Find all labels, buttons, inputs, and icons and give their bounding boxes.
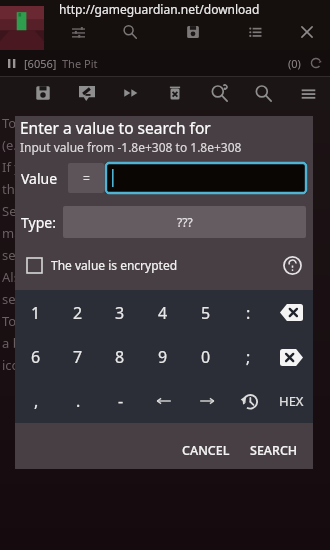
staticText: Search results appear in the xyxy=(2,202,173,220)
staticText: the value, use fuzzy search. xyxy=(2,180,169,198)
button[interactable]: Search xyxy=(241,76,285,110)
button[interactable]: List xyxy=(226,19,284,45)
button[interactable]: 0 xyxy=(184,335,227,379)
staticText: (0) xyxy=(288,56,301,71)
staticText: = xyxy=(83,170,90,186)
staticText: If you do not know the exact xyxy=(2,158,176,176)
staticText: 1 xyxy=(31,302,41,324)
button[interactable]: Save xyxy=(21,76,65,110)
staticText: - xyxy=(118,390,124,412)
button[interactable]: Load xyxy=(65,76,109,110)
staticText: selecting a different type. xyxy=(2,290,157,308)
staticText: 7 xyxy=(73,346,83,368)
button[interactable]: 6 xyxy=(15,335,57,379)
staticText: 3 xyxy=(115,302,125,324)
button[interactable]: Delete xyxy=(153,76,197,110)
button[interactable]: 8 xyxy=(99,335,141,379)
button[interactable]: HEX xyxy=(270,379,313,423)
button[interactable]: 5 xyxy=(184,290,227,335)
staticText: The value is encrypted xyxy=(51,257,178,273)
button[interactable]: = xyxy=(68,163,104,193)
staticText: 6 xyxy=(31,346,41,368)
staticText: 9 xyxy=(158,346,168,368)
button[interactable]: Delete xyxy=(270,335,313,379)
button[interactable]: Search xyxy=(100,19,160,45)
button[interactable]: 3 xyxy=(99,290,141,335)
staticText: select and edit the value. xyxy=(2,246,154,264)
button[interactable]: SEARCH xyxy=(240,435,308,465)
button[interactable] xyxy=(142,379,185,423)
button[interactable]: History xyxy=(228,379,270,423)
button[interactable]: CANCEL xyxy=(172,435,240,465)
button[interactable]: Search options xyxy=(197,76,241,110)
staticText: a back button or use the xyxy=(2,334,151,352)
button[interactable]: 9 xyxy=(141,335,184,379)
staticText: , xyxy=(34,390,39,412)
button[interactable]: , xyxy=(15,379,57,423)
staticText: CANCEL xyxy=(182,442,230,459)
button[interactable]: . xyxy=(57,379,99,423)
button[interactable]: Backspace xyxy=(270,290,313,335)
staticText: To search for a value, enter it xyxy=(2,114,179,132)
staticText: icon in the toolbar above. xyxy=(2,356,158,374)
staticText: 5 xyxy=(201,302,211,324)
button[interactable]: The value is encrypted xyxy=(27,257,178,273)
button[interactable] xyxy=(185,379,228,423)
staticText: (e.g. 100) and press SEARCH. xyxy=(2,136,177,154)
staticText: : xyxy=(246,302,251,324)
staticText: HEX xyxy=(279,392,304,410)
button[interactable]: Menu xyxy=(286,76,330,110)
staticText: Value xyxy=(21,169,58,188)
button[interactable]: ??? xyxy=(63,206,306,238)
staticText: 4 xyxy=(158,302,168,324)
staticText: 0 xyxy=(201,346,211,368)
button[interactable]: Tune xyxy=(56,19,100,45)
staticText: 2 xyxy=(73,302,83,324)
button[interactable]: 1 xyxy=(15,290,57,335)
staticText: . xyxy=(76,390,81,412)
button[interactable]: 7 xyxy=(57,335,99,379)
staticText: The Pit xyxy=(62,56,98,71)
staticText: Also you can refine results xyxy=(2,268,162,286)
staticText: main list. Tap a result to xyxy=(2,224,147,242)
button[interactable]: Help xyxy=(281,254,303,276)
button[interactable]: 2 xyxy=(57,290,99,335)
staticText: ; xyxy=(246,346,251,368)
staticText: [6056] xyxy=(24,56,57,71)
button[interactable]: ; xyxy=(227,335,270,379)
staticText: Type: xyxy=(21,213,56,232)
staticText: http://gameguardian.net/download xyxy=(59,1,260,17)
button[interactable]: Speed xyxy=(109,76,153,110)
button[interactable]: Close xyxy=(284,19,330,45)
button[interactable]: Save xyxy=(160,19,226,45)
staticText: ??? xyxy=(177,214,193,230)
staticText: Enter a value to search for xyxy=(20,117,211,138)
staticText: SEARCH xyxy=(250,442,298,459)
staticText: To cancel the search press xyxy=(2,312,162,330)
button[interactable]: - xyxy=(99,379,142,423)
button[interactable] xyxy=(105,162,307,194)
staticText: 8 xyxy=(115,346,125,368)
button[interactable]: 4 xyxy=(141,290,184,335)
button[interactable]: : xyxy=(227,290,270,335)
staticText: Input value from -1.8e+308 to 1.8e+308 xyxy=(20,139,242,155)
